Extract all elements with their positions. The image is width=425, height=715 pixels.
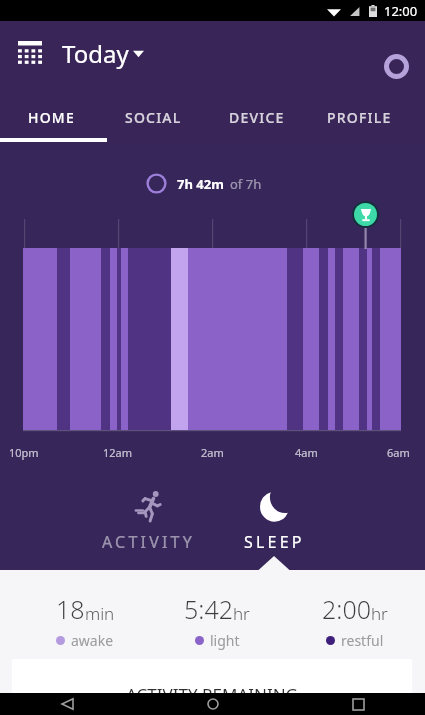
button[interactable]: Today (18, 37, 144, 70)
staticText: Today (62, 37, 129, 70)
staticText: PROFILE (327, 108, 392, 127)
staticText: 2am (201, 445, 224, 460)
staticText: HOME (28, 108, 75, 127)
staticText: 12:00 (384, 2, 418, 20)
staticText: 12am (103, 445, 133, 460)
staticText: min (85, 602, 115, 625)
staticText: 18 (56, 592, 85, 626)
staticText: 7h 42m (177, 175, 224, 193)
staticText: SLEEP (244, 531, 305, 553)
staticText: 6am (387, 445, 410, 460)
button[interactable]: Recents (345, 693, 371, 715)
staticText: 5:42 (184, 592, 233, 626)
staticText: hr (233, 602, 250, 625)
staticText: SOCIAL (125, 108, 182, 127)
staticText: 10pm (9, 445, 39, 460)
staticText: hr (371, 602, 388, 625)
staticText: of 7h (230, 175, 262, 193)
button[interactable]: Achievement (352, 201, 379, 228)
button[interactable]: ACTIVITY (95, 482, 205, 562)
staticText: ACTIVITY (102, 531, 195, 553)
button[interactable]: DEVICE (205, 100, 308, 143)
staticText: restful (341, 631, 384, 650)
button[interactable]: SOCIAL (102, 100, 205, 143)
staticText: 4am (295, 445, 318, 460)
staticText: light (210, 631, 240, 650)
staticText: 2:00 (322, 592, 371, 626)
button[interactable]: ACTIVITY REMAINING (12, 659, 412, 693)
button[interactable]: Back (54, 693, 80, 715)
button[interactable]: HOME (0, 100, 102, 143)
button[interactable]: Home (200, 693, 226, 715)
staticText: awake (71, 631, 114, 650)
button[interactable]: Sync (379, 49, 413, 83)
staticText: DEVICE (229, 108, 285, 127)
staticText: ACTIVITY REMAINING (126, 683, 298, 706)
button[interactable]: SLEEP (236, 482, 316, 562)
button[interactable]: PROFILE (308, 100, 411, 143)
